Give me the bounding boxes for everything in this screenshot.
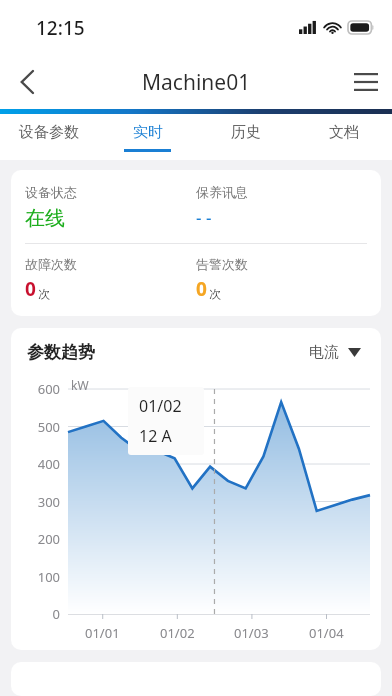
button[interactable]: 设备参数: [0, 114, 98, 160]
button[interactable]: 电流: [305, 339, 365, 366]
staticText: 告警次数: [196, 256, 248, 272]
staticText: 500: [37, 418, 60, 436]
staticText: 在线: [25, 206, 65, 231]
staticText: 电流: [309, 343, 339, 362]
staticText: 实时: [133, 123, 163, 142]
staticText: 01/03: [234, 624, 269, 642]
staticText: 设备参数: [19, 123, 79, 142]
staticText: 12 A: [139, 425, 172, 447]
staticText: 故障次数: [25, 256, 77, 272]
staticText: 0: [52, 605, 60, 623]
staticText: 100: [37, 568, 60, 586]
staticText: 01/04: [309, 624, 344, 642]
staticText: 400: [37, 455, 60, 473]
button[interactable]: 实时: [98, 114, 196, 160]
staticText: 01/02: [139, 395, 182, 417]
staticText: 600: [37, 380, 60, 398]
button[interactable]: Back: [0, 55, 54, 109]
staticText: 参数趋势: [27, 342, 95, 363]
button[interactable]: Menu: [340, 55, 392, 109]
staticText: kW: [71, 377, 89, 393]
staticText: 0: [196, 276, 207, 302]
staticText: 200: [37, 530, 60, 548]
staticText: 历史: [231, 123, 261, 142]
button[interactable]: 历史: [196, 114, 294, 160]
staticText: 12:15: [36, 15, 85, 41]
staticText: 01/01: [85, 624, 120, 642]
staticText: 300: [37, 493, 60, 511]
button[interactable]: 文档: [294, 114, 392, 160]
staticText: 次: [209, 286, 221, 301]
staticText: 文档: [329, 123, 359, 142]
staticText: 次: [38, 286, 50, 301]
staticText: 保养讯息: [196, 184, 248, 200]
staticText: 0: [25, 276, 36, 302]
staticText: Machine01: [142, 68, 251, 97]
staticText: - -: [196, 206, 212, 229]
staticText: 01/02: [160, 624, 195, 642]
staticText: 设备状态: [25, 184, 77, 200]
